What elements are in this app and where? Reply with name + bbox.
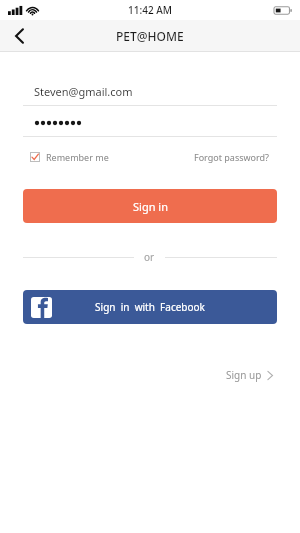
staticText: Forgot password?	[194, 151, 270, 163]
button[interactable]: Sign in	[23, 189, 277, 223]
button[interactable]: Forgot password?	[194, 151, 270, 163]
button[interactable]: Remember me	[30, 151, 109, 163]
button[interactable]: Back	[6, 23, 32, 49]
staticText: PET@HOME	[116, 28, 184, 44]
staticText: Remember me	[46, 151, 109, 163]
staticText: Sign in with Facebook	[95, 300, 205, 314]
staticText: Sign up	[226, 368, 262, 382]
button[interactable]: Sign in with Facebook	[23, 290, 277, 324]
button[interactable]	[23, 120, 277, 137]
staticText: 11:42 AM	[128, 3, 172, 17]
staticText: or	[144, 250, 155, 264]
button[interactable]: Steven@gmail.com	[23, 84, 277, 106]
button[interactable]: Sign up	[222, 364, 277, 386]
staticText: Sign in	[133, 199, 168, 214]
staticText: Steven@gmail.com	[34, 84, 133, 99]
